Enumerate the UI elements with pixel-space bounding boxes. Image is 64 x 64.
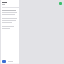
button[interactable]: Continue [2,60,6,63]
button[interactable]: Status [2,1,62,5]
button[interactable]: Status [59,2,62,5]
